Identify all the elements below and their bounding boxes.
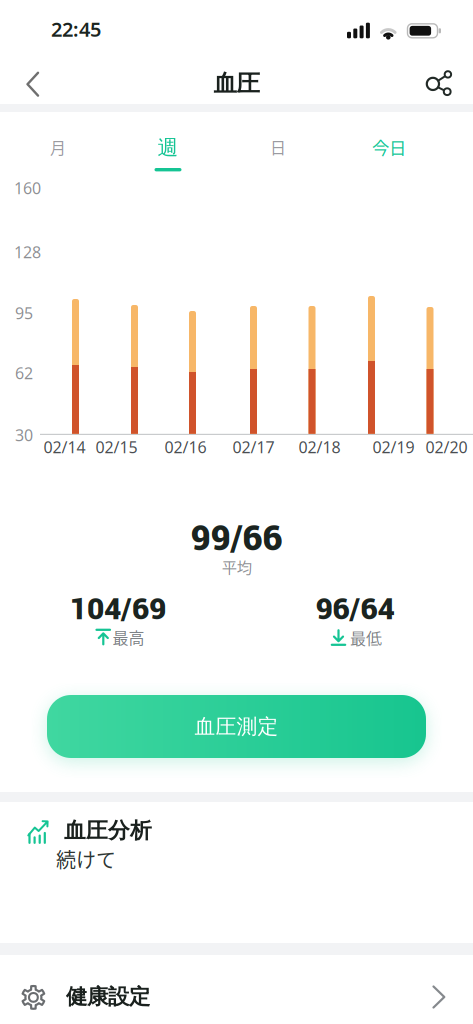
staticText: 02/20	[425, 436, 467, 458]
staticText: 96/64	[315, 588, 394, 631]
staticText: 最低	[350, 626, 382, 649]
staticText: 104/69	[70, 588, 166, 631]
staticText: 健康設定	[66, 983, 150, 1010]
staticText: 02/16	[164, 436, 206, 458]
staticText: 22:45	[51, 16, 101, 42]
staticText: 02/19	[372, 436, 414, 458]
staticText: 月	[50, 135, 66, 159]
staticText: 続けて	[56, 844, 116, 873]
staticText: 血圧測定	[194, 713, 278, 739]
staticText: 02/15	[95, 436, 137, 458]
staticText: 日	[270, 135, 286, 159]
staticText: 02/18	[298, 436, 340, 458]
staticText: 今日	[372, 134, 406, 160]
staticText: 週	[157, 134, 178, 160]
staticText: 99/66	[190, 514, 282, 564]
staticText: 95	[15, 302, 33, 324]
staticText: 160	[14, 177, 41, 199]
staticText: 血圧分析	[64, 817, 152, 844]
staticText: 最高	[112, 625, 144, 649]
staticText: 30	[15, 424, 33, 446]
staticText: 02/17	[232, 436, 274, 458]
staticText: 128	[14, 241, 41, 263]
staticText: 平均	[222, 555, 252, 578]
staticText: 血圧	[213, 69, 259, 98]
staticText: 02/14	[43, 436, 85, 458]
staticText: 62	[15, 362, 33, 384]
